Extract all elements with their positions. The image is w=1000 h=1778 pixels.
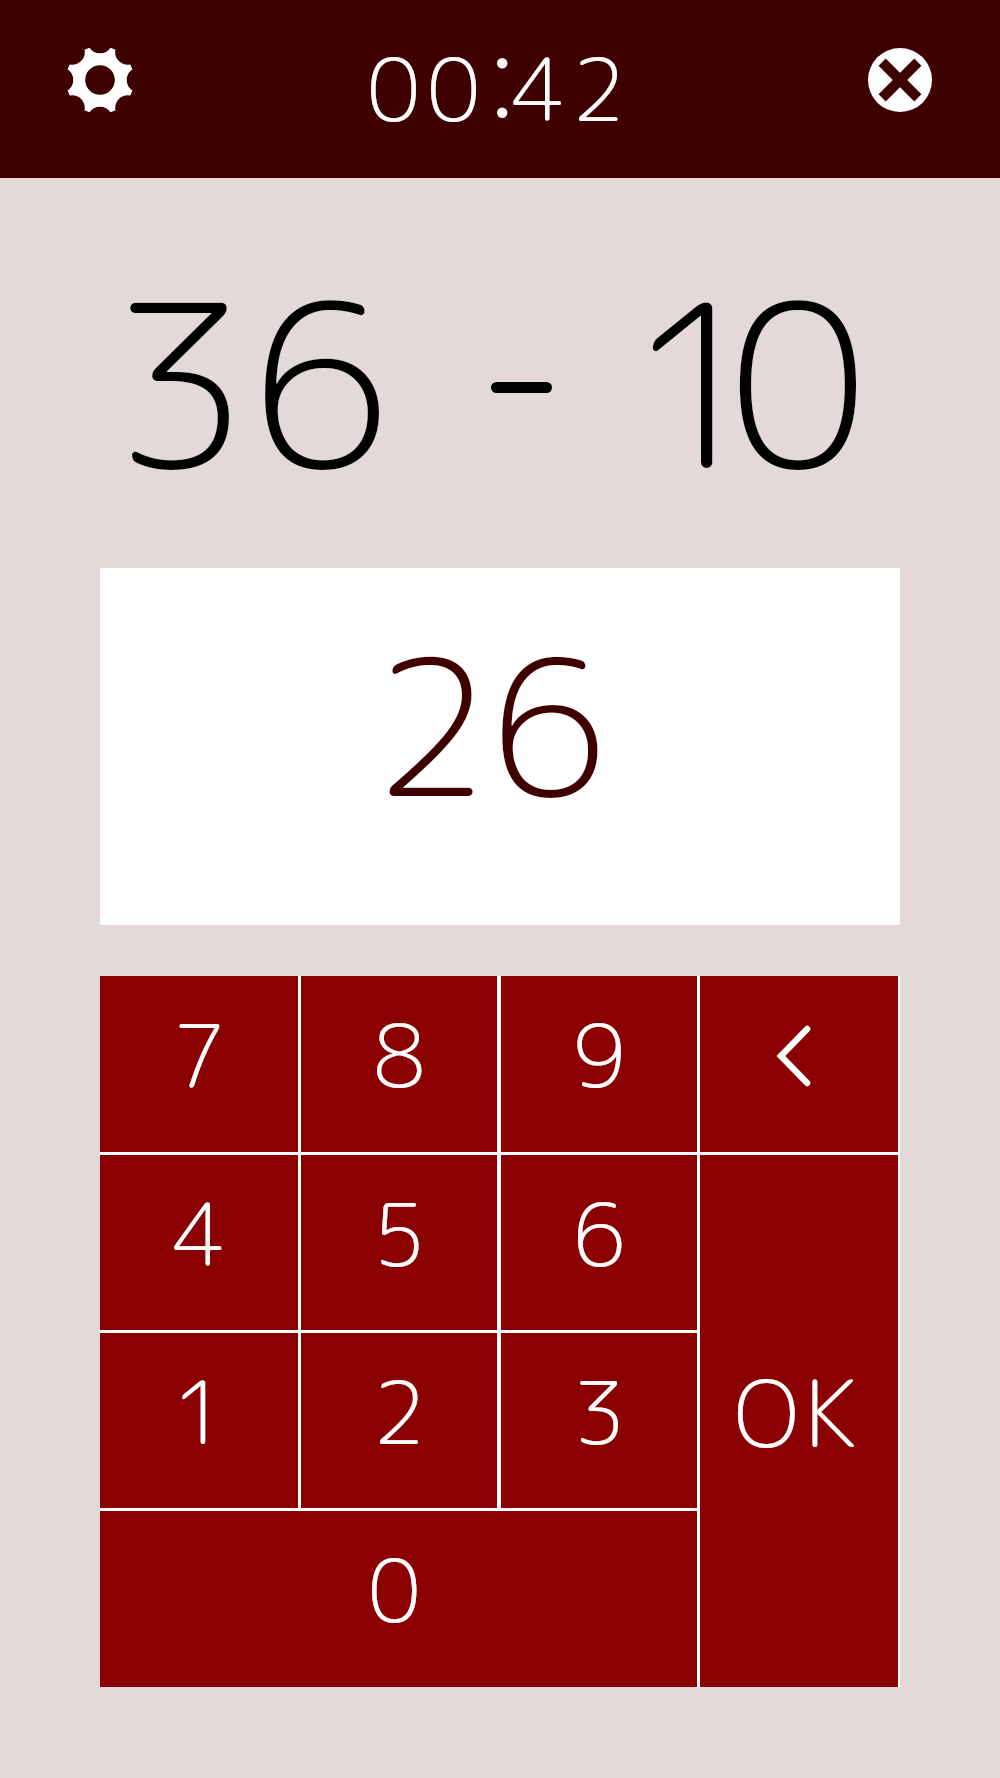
button[interactable]: OK [700,1155,898,1687]
button[interactable]: 1 [100,1333,298,1508]
button[interactable]: 9 [501,976,697,1152]
button[interactable]: 5 [301,1155,497,1330]
button[interactable]: 8 [301,976,497,1152]
staticText: 0 [368,1530,421,1650]
staticText: 0 [729,225,867,540]
staticText: 00 [367,27,488,148]
button[interactable]: 3 [501,1333,697,1508]
button[interactable]: 4 [100,1155,298,1330]
button[interactable]: 6 [501,1155,697,1330]
staticText: 8 [373,995,426,1115]
staticText: 26 [374,593,609,857]
button[interactable]: Backspace [700,976,898,1152]
staticText: 1 [628,225,766,540]
button[interactable]: Settings [36,25,164,153]
button[interactable]: 2 [301,1333,497,1508]
button[interactable]: 0 [100,1511,697,1687]
staticText: 5 [373,1174,426,1294]
staticText: 6 [252,225,390,540]
staticText: 9 [573,995,626,1115]
staticText: 2 [373,1352,426,1472]
staticText: 42 [512,27,633,148]
staticText: 3 [111,225,249,540]
staticText: 4 [173,1174,226,1294]
staticText: 1 [173,1352,226,1472]
staticText: OK [734,1348,864,1476]
staticText: 6 [573,1174,626,1294]
staticText: 3 [573,1352,626,1472]
button[interactable]: 7 [100,976,298,1152]
button[interactable]: Close [836,25,964,153]
staticText: 7 [173,995,226,1115]
